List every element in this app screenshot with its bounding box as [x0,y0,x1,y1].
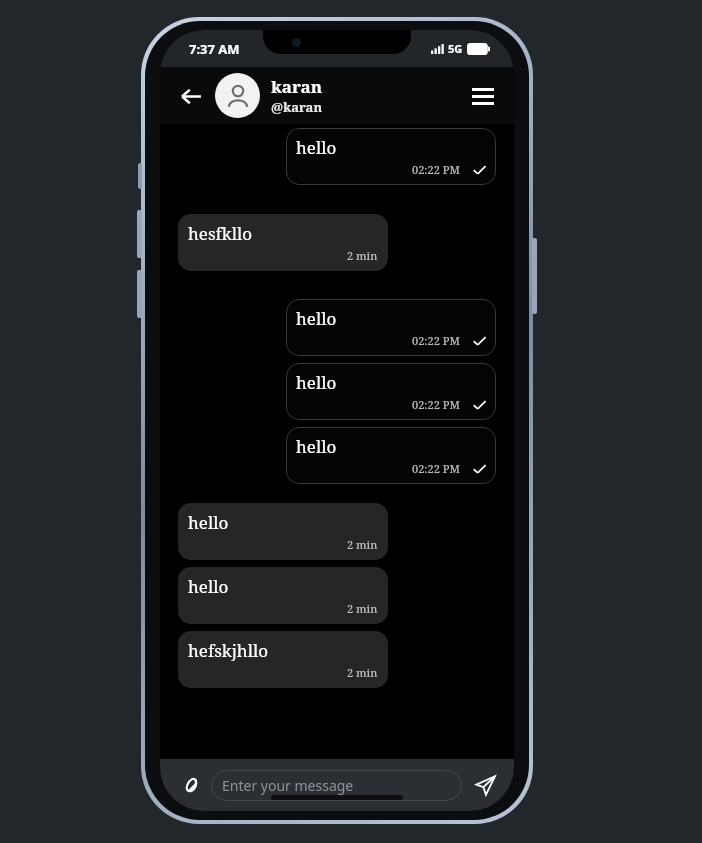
staticText: 02:22 PM [412,333,460,348]
button[interactable]: hefskjhllo [178,631,388,688]
staticText: 02:22 PM [412,397,460,412]
staticText: 2 min [347,248,378,263]
button[interactable]: hello [286,363,496,420]
staticText: hello [296,435,337,458]
button[interactable]: karan [215,73,466,118]
staticText: @karan [271,98,323,116]
staticText: hello [296,307,337,330]
staticText: 02:22 PM [412,461,460,476]
button[interactable]: hello [286,128,496,185]
staticText: hefskjhllo [188,639,269,662]
button[interactable]: Menu [466,79,500,113]
staticText: Enter your message [222,776,354,795]
button[interactable]: hello [178,503,388,560]
staticText: 2 min [347,601,378,616]
staticText: hello [296,371,337,394]
staticText: 02:22 PM [412,162,460,177]
button[interactable]: Attach file [174,769,206,801]
button[interactable]: Enter your message [211,770,462,801]
button[interactable]: hello [286,299,496,356]
button[interactable]: Send [468,768,502,802]
button[interactable]: hesfkllo [178,214,388,271]
staticText: 2 min [347,537,378,552]
button[interactable]: hello [286,427,496,484]
staticText: 7:37 AM [189,40,240,58]
staticText: 5G [448,41,463,56]
staticText: hello [296,136,337,159]
staticText: hesfkllo [188,222,253,245]
button[interactable]: Back [174,79,208,113]
staticText: hello [188,575,229,598]
staticText: karan [271,75,323,98]
staticText: 2 min [347,665,378,680]
staticText: hello [188,511,229,534]
button[interactable]: hello [178,567,388,624]
